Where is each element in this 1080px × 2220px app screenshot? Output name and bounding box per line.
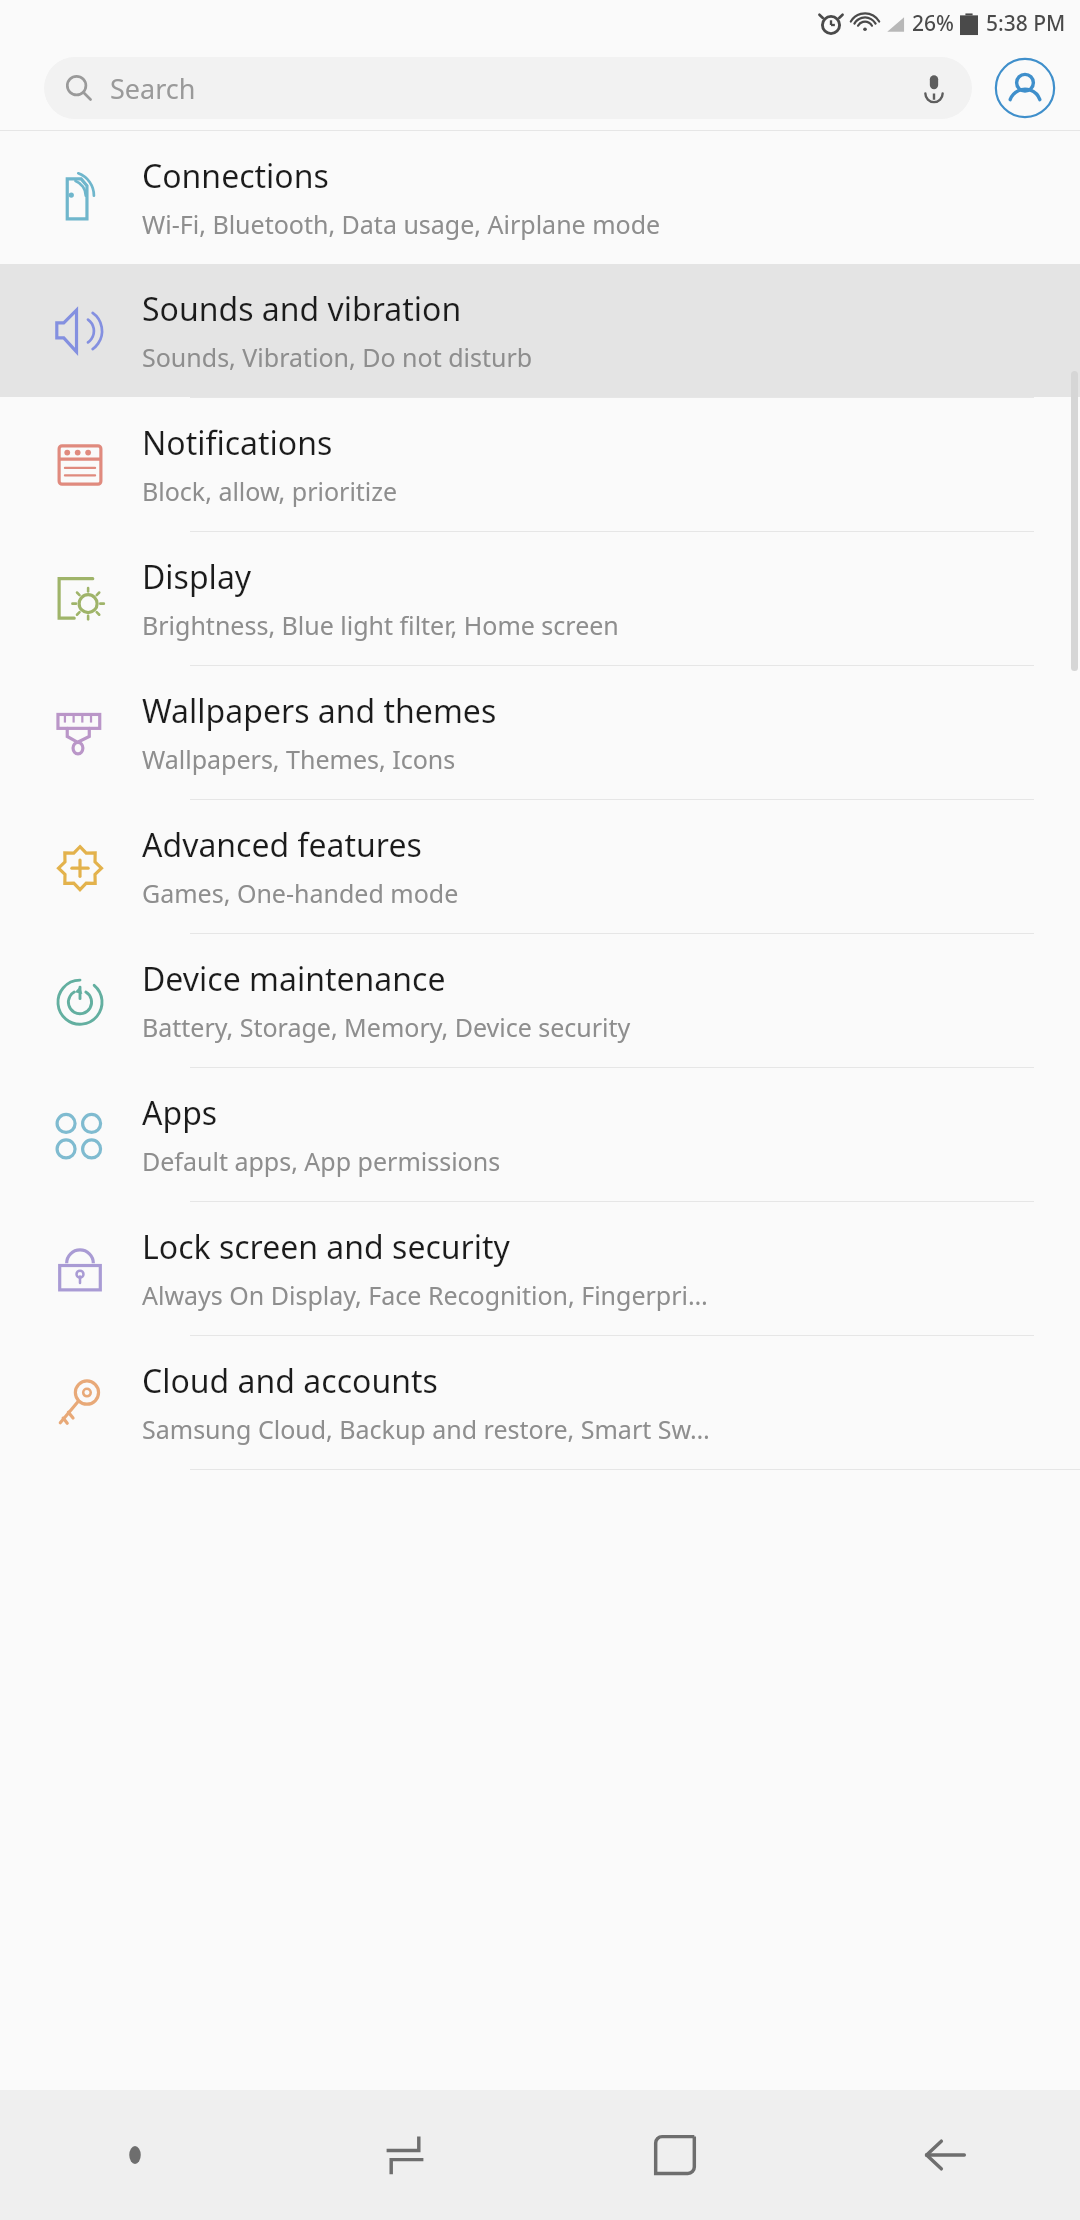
- button[interactable]: Recents: [270, 2090, 540, 2220]
- staticText: Default apps, App permissions: [142, 1144, 501, 1178]
- button[interactable]: Wallpapers and themes: [0, 666, 1080, 799]
- staticText: Search: [110, 70, 916, 107]
- staticText: Sounds and vibration: [142, 287, 462, 331]
- button[interactable]: Advanced features: [0, 800, 1080, 933]
- button[interactable]: Lock screen and security: [0, 1202, 1080, 1335]
- staticText: Notifications: [142, 421, 333, 465]
- button[interactable]: Cloud and accounts: [0, 1336, 1080, 1469]
- staticText: Brightness, Blue light filter, Home scre…: [142, 608, 619, 642]
- staticText: Advanced features: [142, 823, 422, 867]
- staticText: Battery, Storage, Memory, Device securit…: [142, 1010, 631, 1044]
- button[interactable]: Notifications: [0, 398, 1080, 531]
- staticText: Cloud and accounts: [142, 1359, 438, 1403]
- staticText: 26%: [912, 9, 954, 38]
- button[interactable]: Voice search: [916, 70, 952, 106]
- staticText: Block, allow, prioritize: [142, 474, 398, 508]
- button[interactable]: Search: [44, 57, 972, 119]
- button[interactable]: Display: [0, 532, 1080, 665]
- staticText: 5:38 PM: [986, 9, 1066, 38]
- button[interactable]: Account: [992, 55, 1058, 121]
- staticText: Sounds, Vibration, Do not disturb: [142, 340, 533, 374]
- button[interactable]: Connections: [0, 131, 1080, 264]
- staticText: Apps: [142, 1091, 218, 1135]
- button[interactable]: Device maintenance: [0, 934, 1080, 1067]
- staticText: Display: [142, 555, 252, 599]
- button[interactable]: Menu: [0, 2090, 270, 2220]
- staticText: Lock screen and security: [142, 1225, 510, 1269]
- staticText: Samsung Cloud, Backup and restore, Smart…: [142, 1412, 710, 1446]
- staticText: Always On Display, Face Recognition, Fin…: [142, 1278, 708, 1312]
- staticText: Wallpapers and themes: [142, 689, 497, 733]
- staticText: Games, One-handed mode: [142, 876, 459, 910]
- button[interactable]: Home: [540, 2090, 810, 2220]
- button[interactable]: Back: [810, 2090, 1080, 2220]
- button[interactable]: Apps: [0, 1068, 1080, 1201]
- staticText: Connections: [142, 154, 329, 198]
- button[interactable]: Sounds and vibration: [0, 264, 1080, 397]
- staticText: Device maintenance: [142, 957, 446, 1001]
- staticText: Wi-Fi, Bluetooth, Data usage, Airplane m…: [142, 207, 661, 241]
- staticText: Wallpapers, Themes, Icons: [142, 742, 456, 776]
